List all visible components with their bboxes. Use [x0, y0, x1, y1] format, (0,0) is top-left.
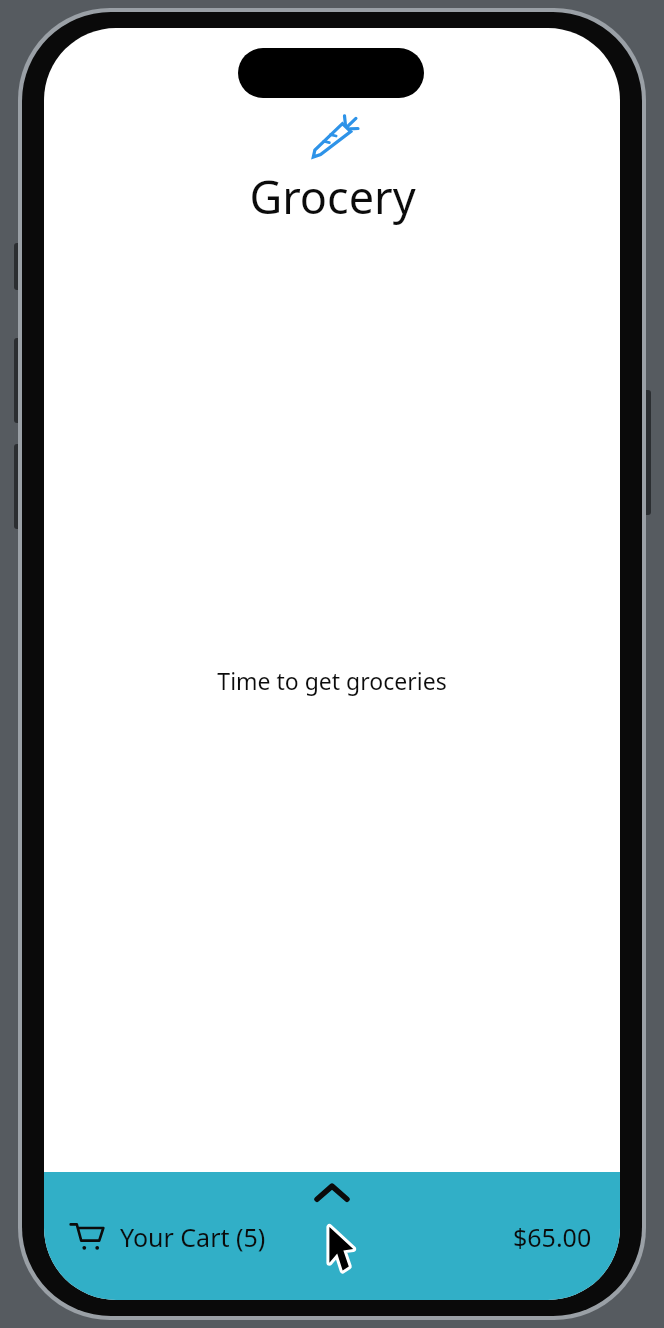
staticText: Time to get groceries [217, 665, 447, 696]
staticText: Your Cart (5) [120, 1220, 266, 1254]
other: Expand cart [317, 1184, 347, 1202]
staticText: $65.00 [513, 1220, 592, 1254]
staticText: Grocery [249, 166, 416, 227]
other: Carrot [306, 114, 358, 158]
button[interactable]: Expand cart [44, 1172, 620, 1300]
